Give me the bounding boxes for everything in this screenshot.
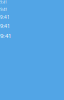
staticText: 9:41 [0, 32, 11, 40]
staticText: 9:41 [0, 14, 10, 20]
staticText: 9:41 [0, 6, 7, 12]
staticText: 9:41 [0, 0, 7, 4]
staticText: 9:41 [0, 22, 10, 30]
